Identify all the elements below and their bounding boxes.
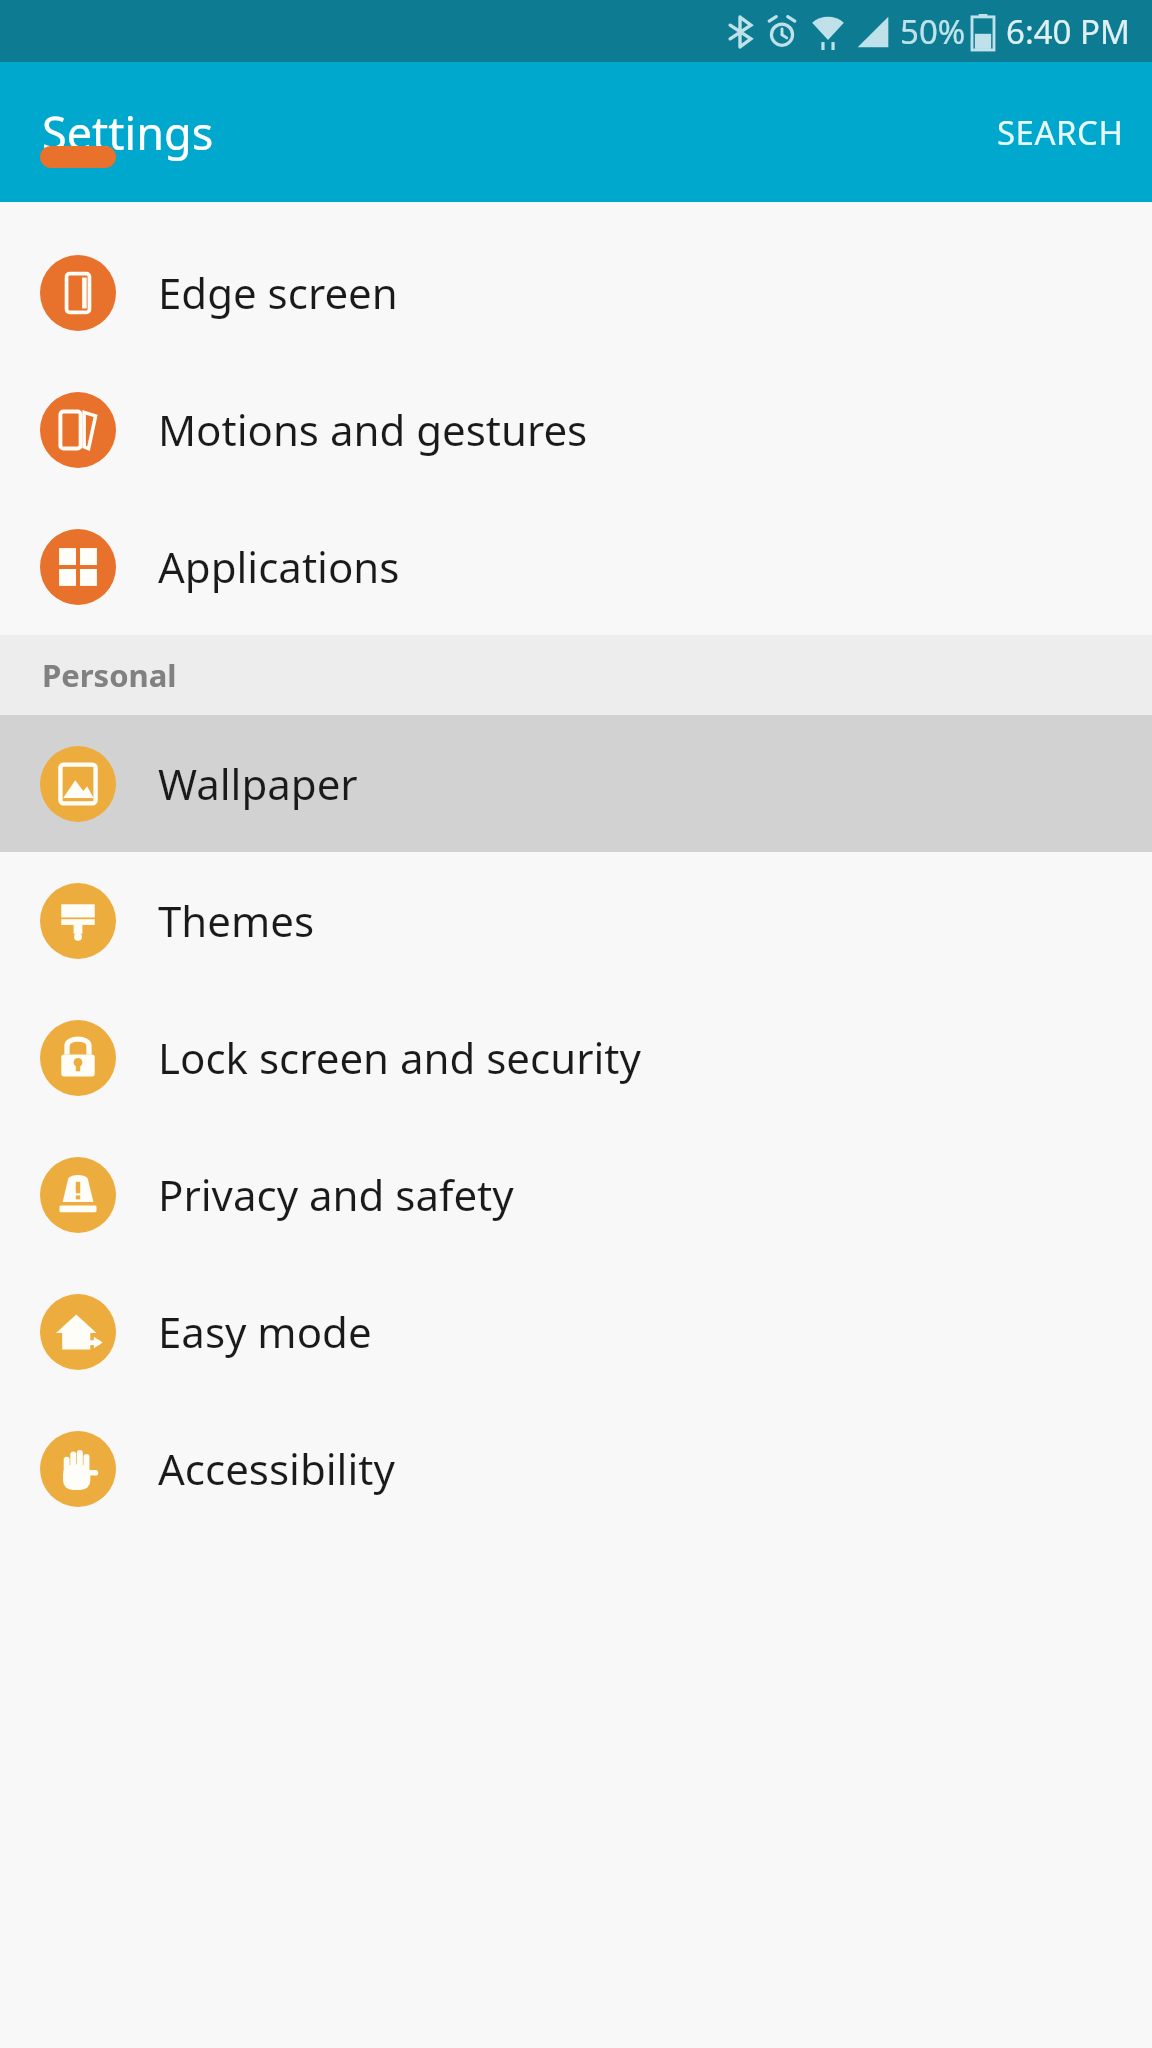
staticText: Applications <box>158 538 400 595</box>
staticText: Settings <box>42 102 214 163</box>
staticText: Accessibility <box>158 1440 395 1497</box>
button[interactable]: Themes <box>0 852 1152 989</box>
staticText: SEARCH <box>997 110 1124 155</box>
button[interactable]: Wallpaper <box>0 715 1152 852</box>
button[interactable]: Applications <box>0 498 1152 635</box>
staticText: Wallpaper <box>158 755 358 812</box>
button[interactable]: Motions and gestures <box>0 361 1152 498</box>
staticText: Easy mode <box>158 1303 372 1360</box>
staticText: 6:40 PM <box>1006 9 1130 54</box>
staticText: Edge screen <box>158 264 398 321</box>
staticText: 50% <box>900 9 966 54</box>
button[interactable]: Easy mode <box>0 1263 1152 1400</box>
staticText: Themes <box>158 892 315 949</box>
staticText: Lock screen and security <box>158 1029 641 1086</box>
staticText: Personal <box>42 654 177 696</box>
staticText: Privacy and safety <box>158 1166 514 1223</box>
button[interactable]: Accessibility <box>0 1400 1152 1537</box>
button[interactable]: Privacy and safety <box>0 1126 1152 1263</box>
button[interactable]: Lock screen and security <box>0 989 1152 1126</box>
button[interactable]: SEARCH <box>969 90 1152 175</box>
staticText: Motions and gestures <box>158 401 588 458</box>
button[interactable]: Edge screen <box>0 224 1152 361</box>
